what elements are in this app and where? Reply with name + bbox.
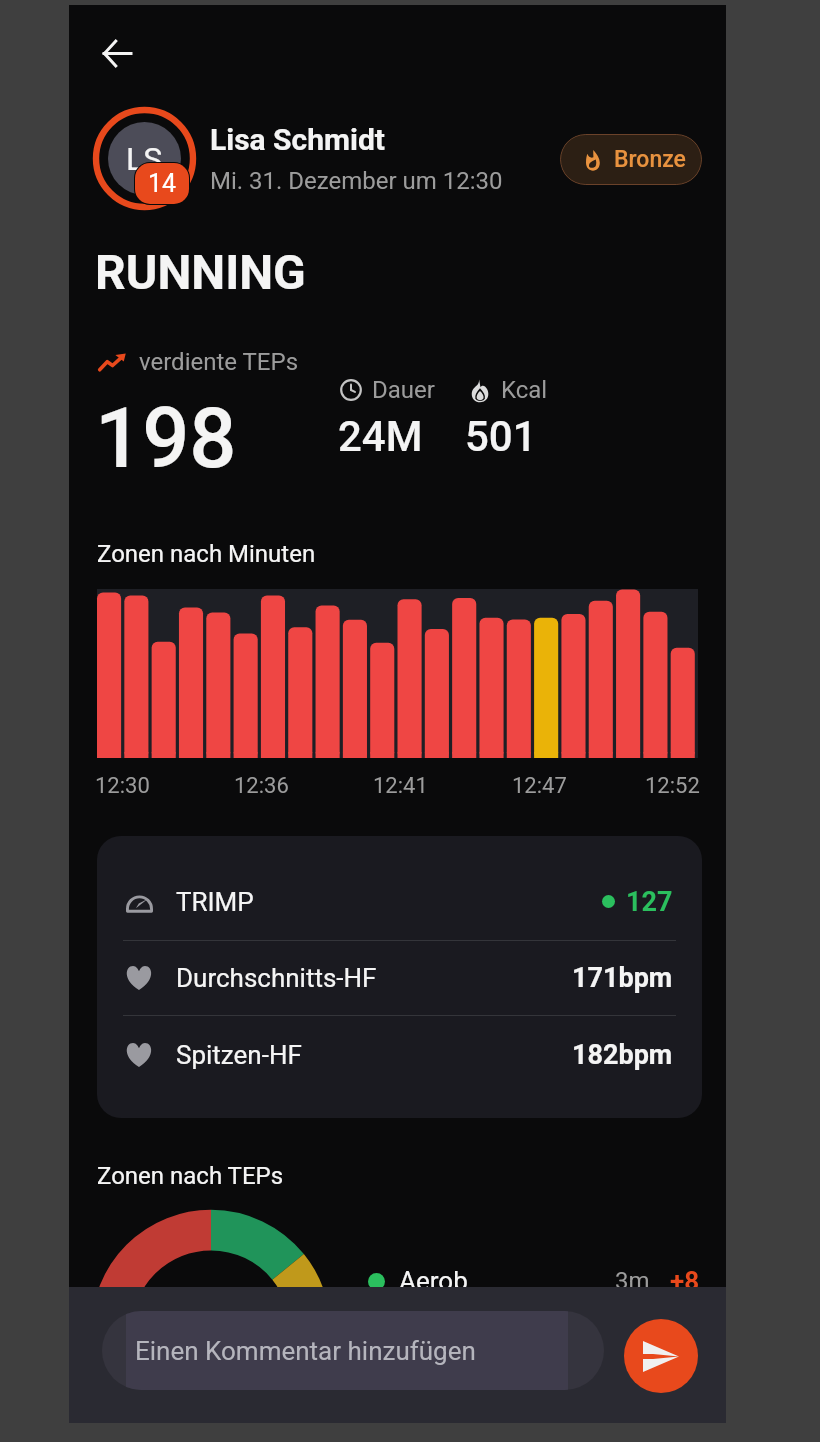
staticText: 182bpm: [572, 1039, 673, 1071]
staticText: Lisa Schmidt: [210, 122, 385, 157]
staticText: 127: [626, 886, 673, 918]
button[interactable]: Einen Kommentar hinzufügen: [102, 1311, 604, 1390]
staticText: verdiente TEPs: [139, 348, 299, 376]
staticText: 12:30: [95, 773, 150, 799]
staticText: Kcal: [501, 376, 548, 404]
staticText: Bronze: [614, 146, 686, 173]
button[interactable]: Bronze: [560, 134, 702, 185]
staticText: Spitzen-HF: [176, 1040, 302, 1070]
staticText: RUNNING: [95, 244, 306, 300]
button[interactable]: TRIMP: [97, 863, 702, 940]
staticText: 24M: [338, 412, 423, 461]
button[interactable]: Spitzen-HF: [97, 1016, 702, 1093]
staticText: Zonen nach Minuten: [97, 540, 316, 568]
staticText: Zonen nach TEPs: [97, 1162, 284, 1190]
staticText: Mi. 31. Dezember um 12:30: [210, 167, 503, 195]
staticText: Aerob: [399, 1266, 468, 1296]
staticText: 12:41: [373, 773, 428, 799]
staticText: Durchschnitts-HF: [176, 963, 377, 993]
staticText: TRIMP: [176, 887, 254, 917]
staticText: 501: [465, 412, 537, 461]
button[interactable]: Durchschnitts-HF: [97, 941, 702, 1015]
staticText: 198: [95, 390, 237, 487]
button[interactable]: Back: [89, 25, 145, 81]
staticText: 14: [148, 169, 177, 198]
button[interactable]: Send: [624, 1319, 698, 1393]
staticText: 12:47: [512, 773, 567, 799]
staticText: LS: [126, 140, 163, 178]
staticText: 12:52: [645, 773, 700, 799]
staticText: 3m: [615, 1267, 650, 1295]
staticText: Einen Kommentar hinzufügen: [135, 1336, 476, 1366]
button[interactable]: Aerob: [368, 1266, 700, 1296]
staticText: +8: [670, 1266, 700, 1296]
staticText: 171bpm: [572, 962, 673, 994]
staticText: Dauer: [372, 376, 435, 404]
staticText: 12:36: [234, 773, 289, 799]
